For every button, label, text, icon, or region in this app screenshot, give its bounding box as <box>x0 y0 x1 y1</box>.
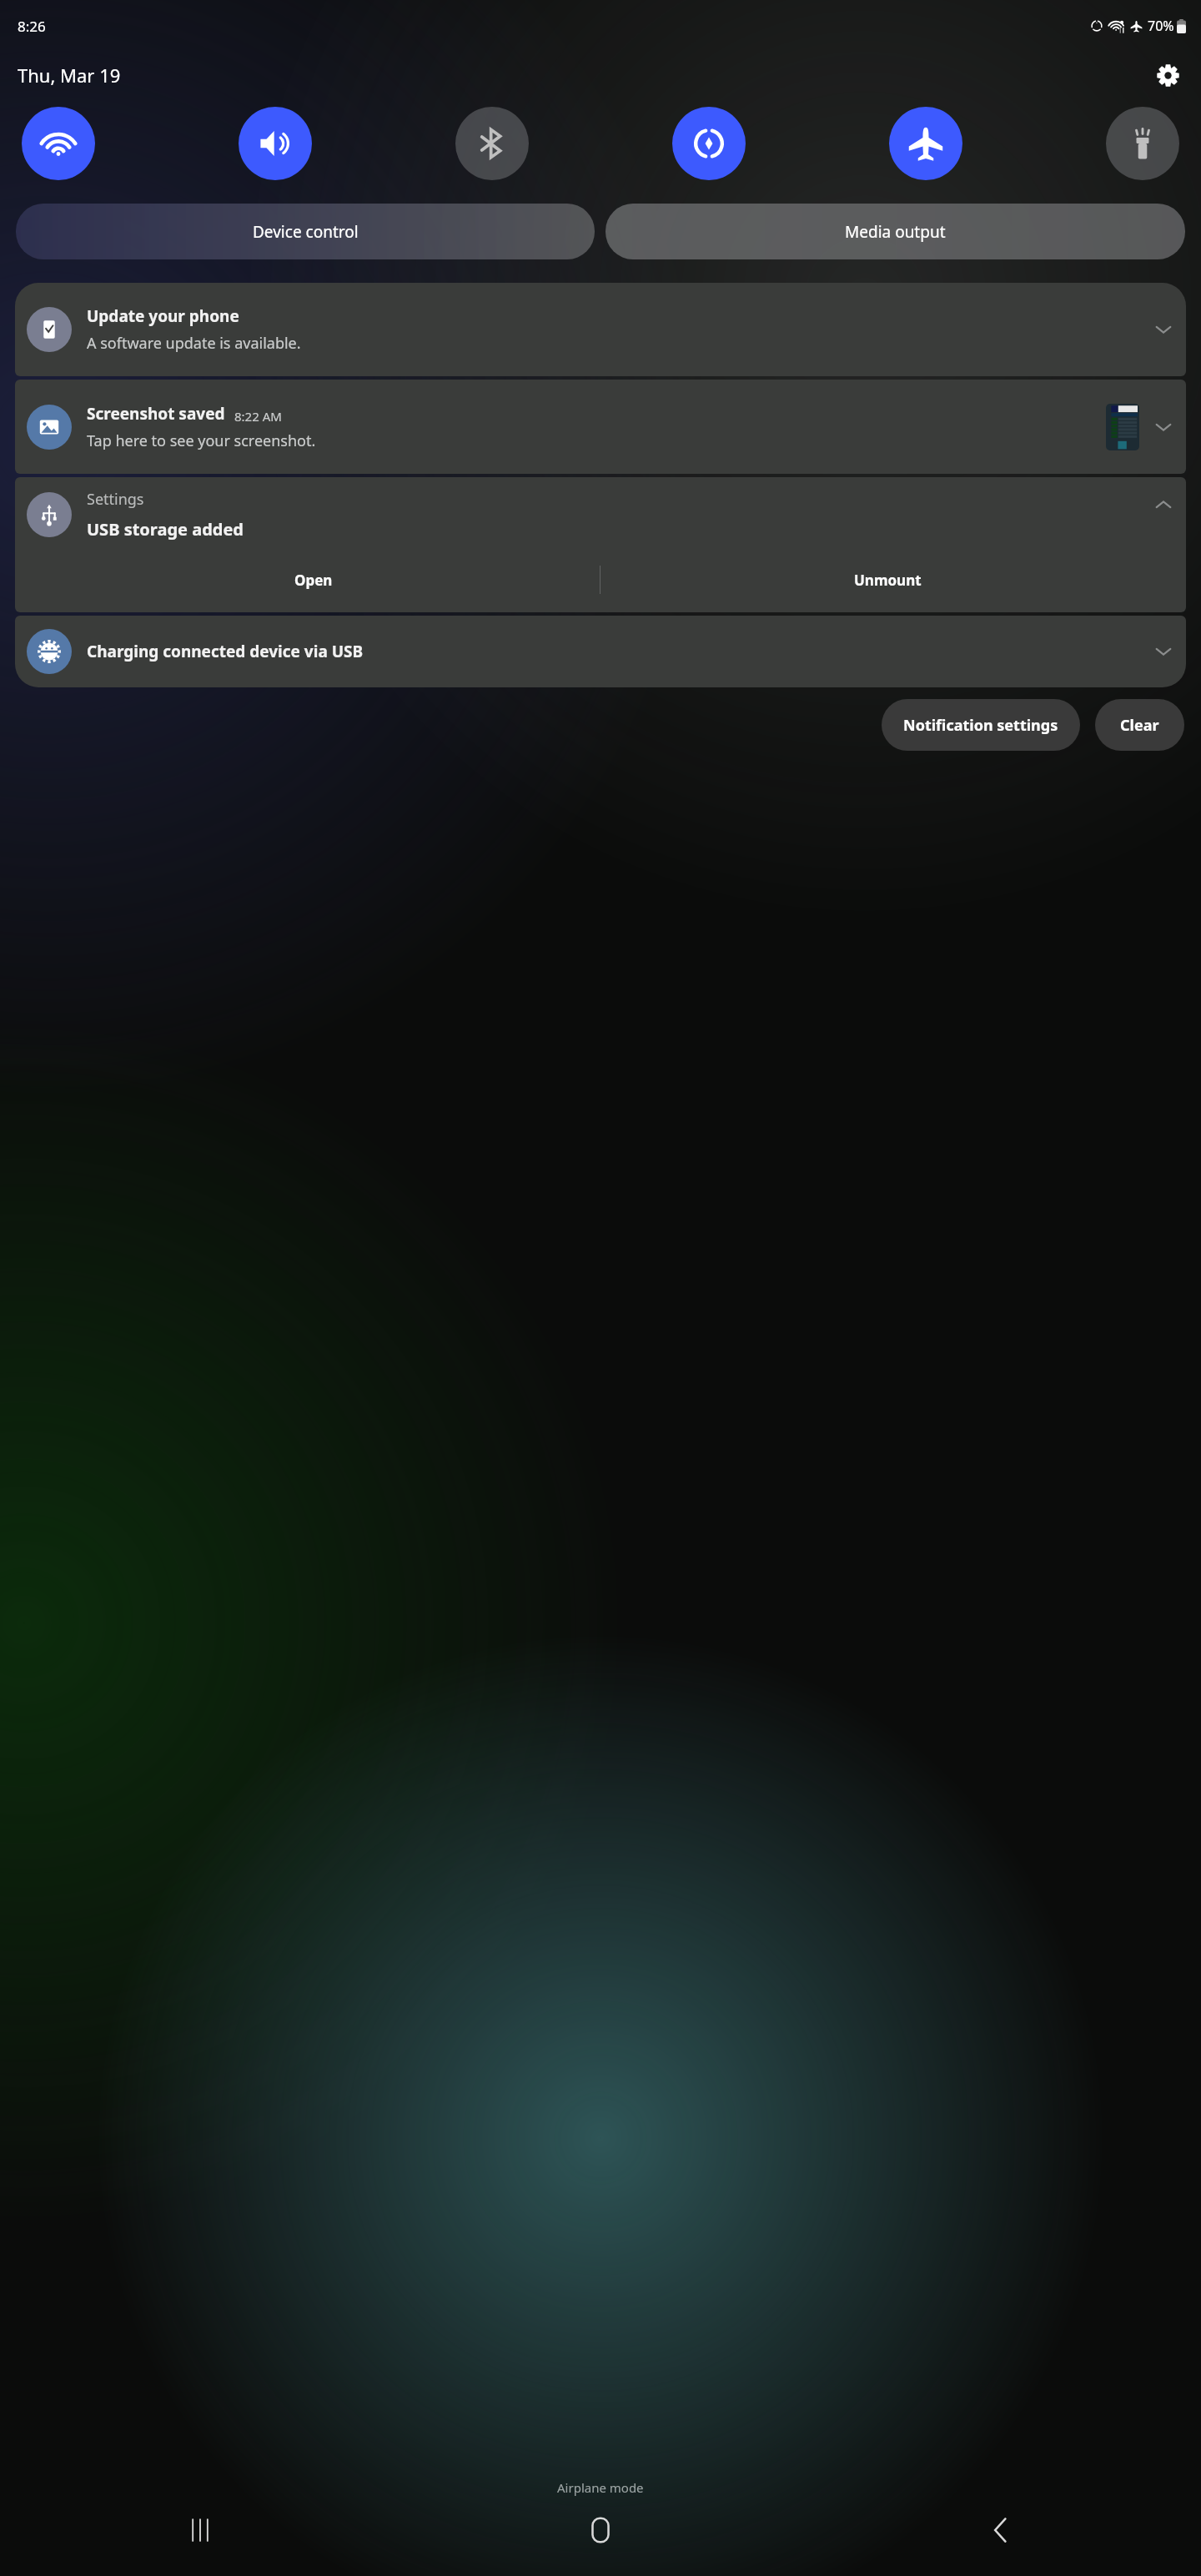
staticText: Settings <box>87 489 144 510</box>
button[interactable]: Device control <box>16 204 595 259</box>
staticText: Tap here to see your screenshot. <box>87 430 316 451</box>
button[interactable]: Unmount <box>600 557 1174 602</box>
staticText: USB storage added <box>87 518 244 541</box>
staticText: Clear <box>1120 715 1159 736</box>
staticText: Thu, Mar 19 <box>18 63 121 88</box>
button[interactable]: Airplane mode <box>889 107 962 180</box>
staticText: A software update is available. <box>87 333 301 354</box>
button[interactable]: Open <box>27 557 600 602</box>
button[interactable]: Recents <box>160 2490 240 2570</box>
staticText: 8:22 AM <box>234 408 282 425</box>
staticText: Charging connected device via USB <box>87 641 1153 662</box>
button[interactable]: Sound <box>239 107 312 180</box>
staticText: 70% <box>1148 17 1174 35</box>
button[interactable]: Flashlight <box>1106 107 1179 180</box>
staticText: Device control <box>253 221 359 243</box>
staticText: Media output <box>845 221 946 243</box>
button[interactable]: Media output <box>606 204 1185 259</box>
button[interactable]: Screenshot saved <box>15 380 1186 474</box>
staticText: Airplane mode <box>557 2479 644 2496</box>
button[interactable]: Update your phone <box>15 283 1186 376</box>
button[interactable]: Settings <box>15 477 1186 612</box>
button[interactable]: Charging connected device via USB <box>15 616 1186 687</box>
staticText: Update your phone <box>87 305 239 327</box>
staticText: Notification settings <box>903 715 1058 736</box>
button[interactable]: Notification settings <box>882 699 1080 751</box>
button[interactable]: Home <box>560 2490 641 2570</box>
staticText: 8:26 <box>18 17 46 36</box>
button[interactable]: Auto rotate <box>672 107 746 180</box>
button[interactable]: Clear <box>1095 699 1184 751</box>
button[interactable]: Bluetooth <box>455 107 529 180</box>
staticText: Screenshot saved <box>87 403 225 425</box>
staticText: Unmount <box>854 571 922 590</box>
staticText: Open <box>294 571 333 590</box>
button[interactable]: Settings <box>1146 53 1189 97</box>
button[interactable]: Back <box>961 2490 1041 2570</box>
button[interactable]: Wi-Fi <box>22 107 95 180</box>
